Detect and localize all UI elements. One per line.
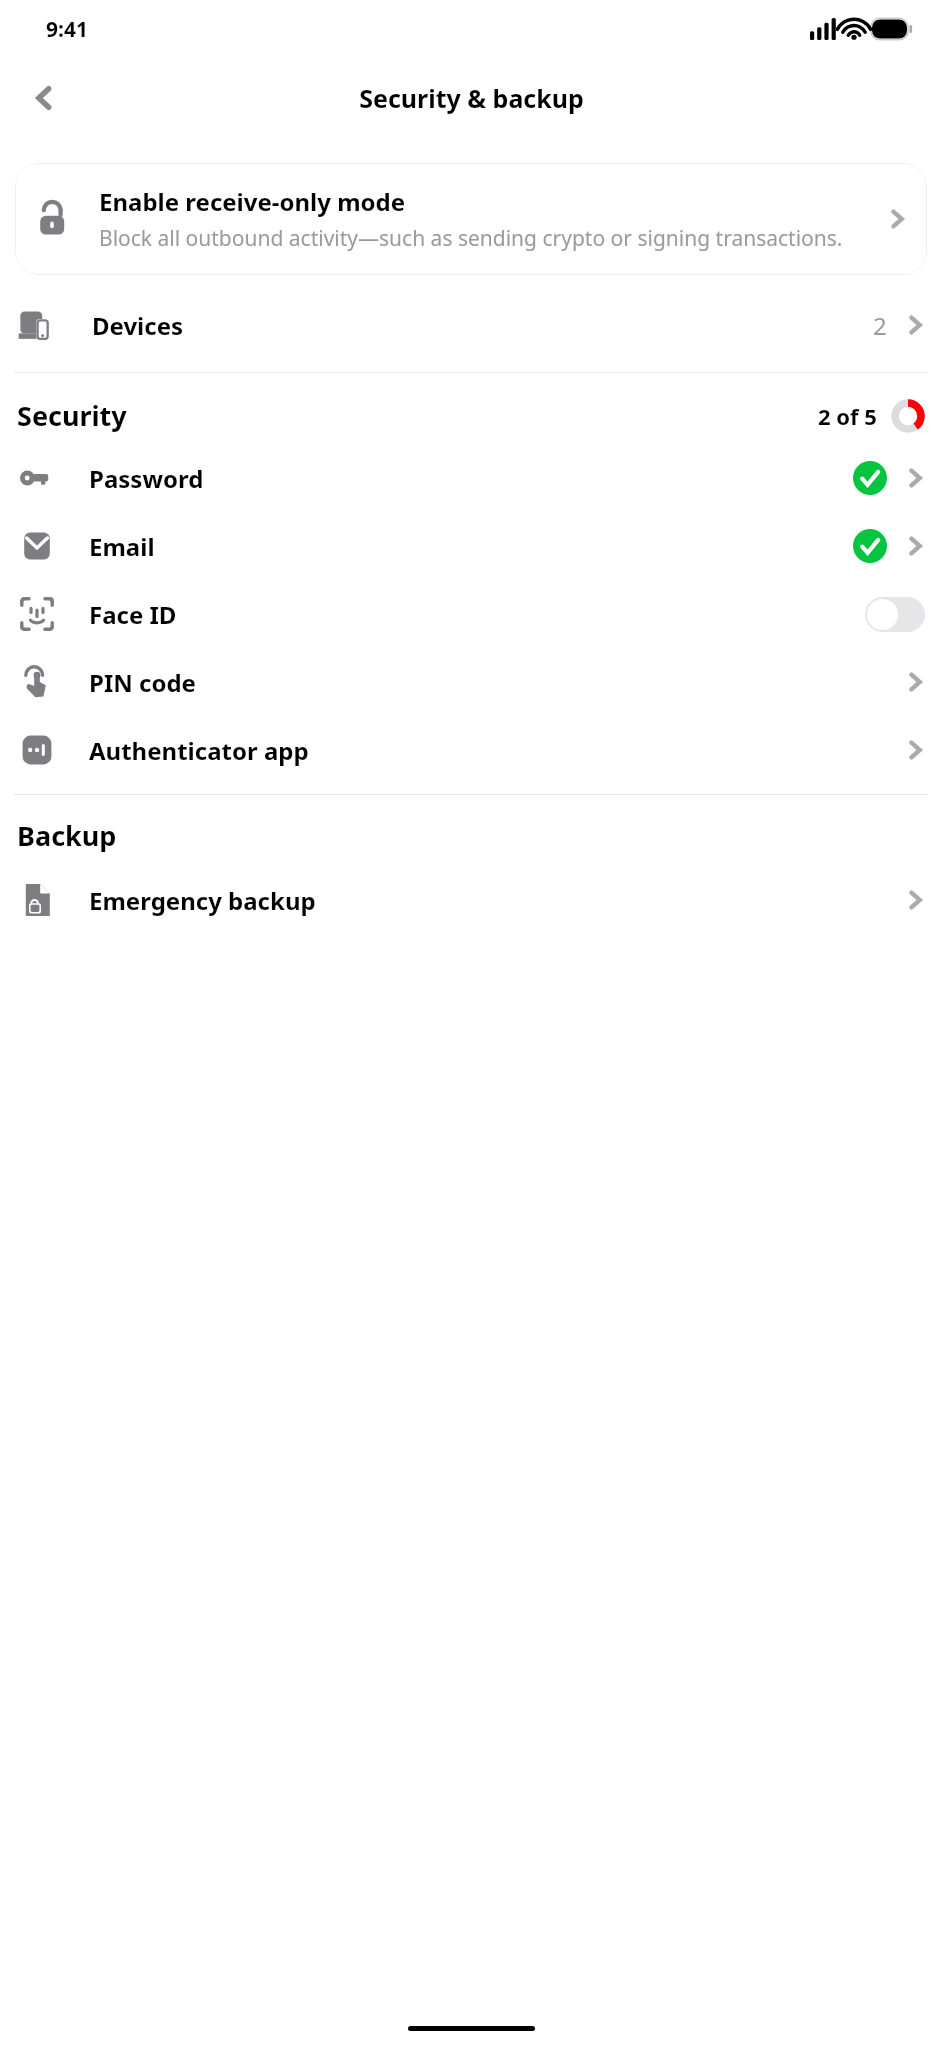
staticText: Security & backup: [359, 81, 584, 115]
button[interactable]: Back: [18, 72, 70, 124]
staticText: PIN code: [89, 666, 905, 699]
staticText: Email: [89, 530, 853, 563]
staticText: Security: [17, 397, 818, 434]
staticText: Authenticator app: [89, 734, 905, 767]
staticText: Password: [89, 462, 853, 495]
button[interactable]: Password: [0, 444, 942, 512]
button[interactable]: Enable receive-only mode: [15, 163, 927, 275]
button[interactable]: Face ID: [0, 580, 942, 648]
staticText: 2 of 5: [818, 401, 877, 431]
button[interactable]: Face ID toggle: [865, 597, 925, 632]
staticText: Devices: [92, 309, 873, 342]
button[interactable]: Email: [0, 512, 942, 580]
staticText: 2: [873, 309, 887, 342]
staticText: Enable receive-only mode: [99, 185, 406, 218]
button[interactable]: PIN code: [0, 648, 942, 716]
button[interactable]: Authenticator app: [0, 716, 942, 784]
staticText: Backup: [17, 817, 117, 854]
button[interactable]: Devices: [0, 291, 942, 359]
staticText: Emergency backup: [89, 884, 905, 917]
staticText: Face ID: [89, 598, 865, 631]
button[interactable]: Emergency backup: [0, 866, 942, 934]
staticText: 9:41: [46, 15, 88, 44]
staticText: Block all outbound activity—such as send…: [99, 224, 843, 253]
